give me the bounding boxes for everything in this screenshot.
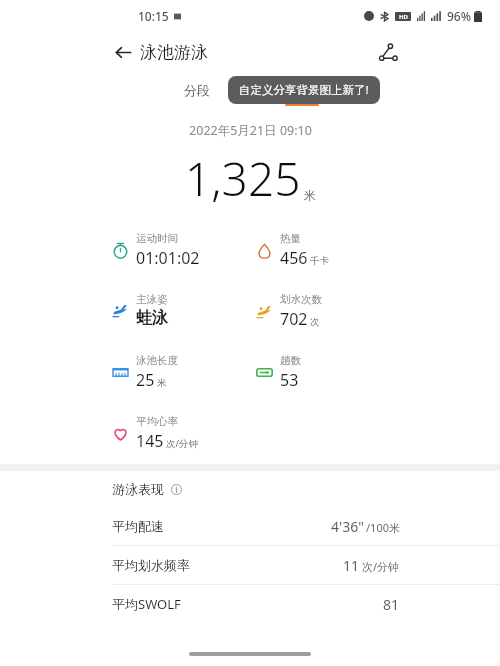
staticText: 702 [280, 308, 308, 330]
button[interactable]: 运动时间 [112, 232, 200, 269]
button[interactable]: Info [168, 481, 184, 497]
button[interactable]: 平均划水频率 [0, 546, 500, 584]
button[interactable]: 趟数 [256, 354, 301, 391]
staticText: 米 [304, 188, 316, 203]
staticText: 25 [136, 369, 155, 391]
staticText: 次 [310, 316, 320, 328]
staticText: 蛙泳 [136, 308, 168, 328]
staticText: 2022年5月21日 09:10 [189, 122, 312, 139]
button[interactable]: 热量 [256, 232, 329, 269]
button[interactable]: Share [372, 36, 404, 68]
staticText: HD [399, 13, 408, 21]
button[interactable]: 平均心率 [112, 415, 199, 452]
button[interactable]: Back [108, 37, 138, 67]
staticText: 分段 [184, 82, 210, 98]
staticText: 划水次数 [280, 293, 322, 306]
button[interactable]: 泳池长度 [112, 354, 178, 391]
button[interactable]: 平均SWOLF [0, 585, 500, 623]
staticText: 01:01:02 [136, 247, 200, 269]
staticText: 主泳姿 [136, 293, 168, 306]
staticText: 1,325 [185, 147, 301, 210]
staticText: 米 [157, 377, 167, 389]
staticText: 平均心率 [136, 415, 178, 428]
staticText: 4'36" [331, 517, 364, 536]
staticText: 热量 [280, 232, 301, 245]
staticText: 81 [383, 595, 400, 614]
staticText: 456 [280, 247, 308, 269]
staticText: 千卡 [310, 255, 329, 267]
staticText: 96% [447, 8, 471, 24]
staticText: 平均配速 [112, 518, 164, 534]
staticText: 10:15 [138, 8, 169, 24]
button[interactable]: 自定义分享背景图上新了! [228, 76, 380, 104]
button[interactable]: 划水次数 [256, 293, 322, 330]
button[interactable]: 平均配速 [0, 507, 500, 545]
staticText: 泳池游泳 [140, 42, 208, 63]
staticText: 趟数 [280, 354, 301, 367]
button[interactable]: 分段 [180, 78, 214, 102]
staticText: 53 [280, 369, 299, 391]
staticText: 平均SWOLF [112, 595, 181, 613]
staticText: 11 [343, 556, 360, 575]
staticText: 游泳表现 [112, 481, 164, 497]
staticText: 平均划水频率 [112, 557, 190, 573]
staticText: 泳池长度 [136, 354, 178, 367]
staticText: 次/分钟 [362, 559, 400, 574]
staticText: 自定义分享背景图上新了! [239, 82, 369, 98]
staticText: 次/分钟 [166, 437, 199, 450]
staticText: 运动时间 [136, 232, 178, 245]
button[interactable]: 主泳姿 [112, 293, 168, 328]
button[interactable]: 泳池游泳 [140, 42, 208, 63]
staticText: /100米 [366, 520, 400, 535]
staticText: 145 [136, 430, 164, 452]
